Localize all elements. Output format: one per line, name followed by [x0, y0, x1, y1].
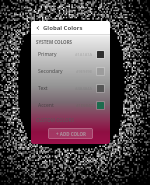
button[interactable]: Text [31, 80, 110, 97]
staticText: SYSTEM COLORS [36, 39, 73, 45]
staticText: #9E9E9E [76, 69, 93, 74]
button[interactable]: + ADD COLOR [48, 128, 93, 139]
staticText: Global Colors [43, 24, 83, 32]
staticText: CUSTOM COLORS [36, 117, 75, 123]
staticText: #4A4A4A [75, 86, 93, 91]
staticText: + ADD COLOR [56, 131, 86, 137]
staticText: #1A1A1A [75, 52, 93, 57]
button[interactable]: Back [31, 21, 110, 34]
staticText: Text [38, 85, 48, 92]
staticText: Primary [38, 51, 57, 58]
button[interactable]: Primary [31, 46, 110, 63]
button[interactable]: Secondary [31, 63, 110, 80]
staticText: Secondary [38, 68, 63, 75]
button[interactable]: Accent [31, 97, 110, 114]
button[interactable]: Back [35, 25, 41, 31]
staticText: Accent [38, 102, 54, 109]
staticText: #1E6B4C [76, 103, 93, 108]
